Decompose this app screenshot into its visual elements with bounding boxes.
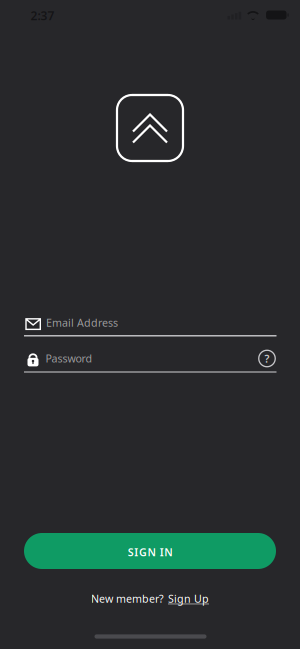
staticText: Email Address <box>46 315 118 330</box>
button[interactable]: Sign Up <box>168 591 209 606</box>
button[interactable]: Password help <box>257 348 277 368</box>
staticText: Sign Up <box>168 591 209 606</box>
staticText: 2:37 <box>30 7 54 23</box>
button[interactable]: SIGN IN <box>24 533 276 569</box>
button[interactable]: Password <box>24 346 276 373</box>
staticText: New member? <box>91 591 164 606</box>
staticText: Password <box>45 351 92 365</box>
staticText: SIGN IN <box>128 545 172 559</box>
button[interactable]: Email Address <box>24 310 276 337</box>
staticText: ? <box>264 351 269 366</box>
